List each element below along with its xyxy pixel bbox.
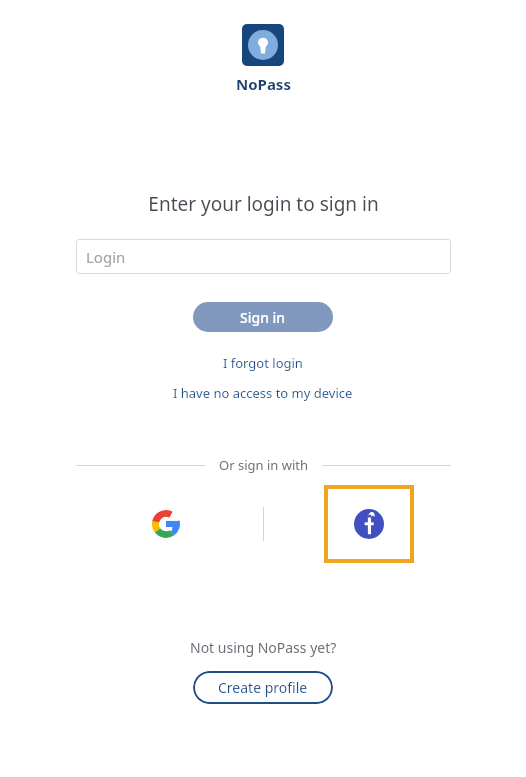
button[interactable]: Login	[76, 239, 451, 274]
staticText: Not using NoPass yet?	[190, 638, 337, 657]
staticText: Or sign in with	[219, 456, 308, 474]
staticText: I have no access to my device	[173, 384, 353, 402]
button[interactable]: I have no access to my device	[167, 382, 359, 404]
button[interactable]: Create profile	[193, 671, 333, 704]
staticText: NoPass	[236, 74, 291, 94]
staticText: I forgot login	[223, 354, 303, 372]
staticText: Sign in	[240, 308, 286, 327]
button[interactable]: Sign in with Google	[148, 506, 184, 542]
button[interactable]: Sign in with Facebook	[324, 485, 414, 563]
button[interactable]: I forgot login	[217, 352, 309, 374]
staticText: Create profile	[218, 678, 308, 697]
button[interactable]: Sign in	[193, 302, 333, 332]
staticText: Enter your login to sign in	[148, 191, 379, 217]
staticText: Login	[86, 247, 126, 267]
